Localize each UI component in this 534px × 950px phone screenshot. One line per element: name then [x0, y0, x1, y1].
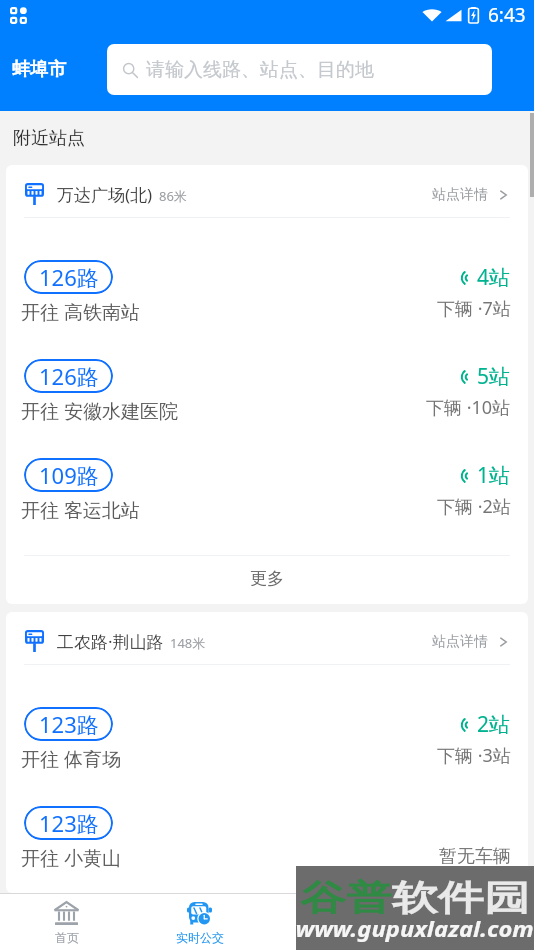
button[interactable]: 首页 — [0, 894, 133, 945]
staticText: 下辆 ·2站 — [437, 494, 511, 519]
button[interactable]: 出行 — [266, 894, 400, 945]
staticText: 123路 — [39, 709, 99, 739]
button[interactable]: 109路 — [6, 438, 528, 537]
button[interactable]: 请输入线路、站点、目的地 — [107, 44, 492, 95]
staticText: 附近站点 — [13, 127, 85, 150]
staticText: 126路 — [39, 361, 99, 391]
staticText: 首页 — [55, 930, 79, 945]
button[interactable]: 我的 — [400, 894, 534, 945]
button[interactable]: 万达广场(北) — [6, 165, 528, 217]
staticText: 软件园 — [392, 876, 530, 920]
staticText: 蚌埠市 — [12, 58, 66, 81]
staticText: 万达广场(北) — [57, 183, 153, 206]
staticText: 开往 客运北站 — [21, 497, 140, 523]
staticText: 工农路·荆山路 — [57, 630, 164, 653]
button[interactable]: 123路 — [6, 687, 528, 786]
staticText: 下辆 ·10站 — [426, 395, 511, 420]
staticText: 开往 小黄山 — [21, 845, 121, 871]
button[interactable]: 蚌埠市 — [0, 50, 107, 89]
staticText: 站点详情 — [432, 186, 488, 204]
button[interactable]: 123路 — [6, 786, 528, 885]
other: Apps — [10, 7, 27, 24]
staticText: 站点详情 — [432, 633, 488, 651]
staticText: 1站 — [477, 461, 511, 490]
button[interactable]: 126路 — [6, 339, 528, 438]
staticText: 开往 安徽水建医院 — [21, 398, 178, 424]
staticText: 下辆 ·3站 — [437, 743, 511, 768]
staticText: 4站 — [477, 263, 511, 292]
staticText: 148米 — [170, 634, 206, 652]
button[interactable]: 126路 — [6, 240, 528, 339]
staticText: 暂无车辆 — [439, 845, 511, 868]
staticText: 开往 高铁南站 — [21, 299, 140, 325]
staticText: 请输入线路、站点、目的地 — [146, 58, 374, 82]
staticText: 5站 — [477, 362, 511, 391]
staticText: 实时公交 — [176, 930, 224, 945]
staticText: 下辆 ·7站 — [437, 296, 511, 321]
staticText: 6:43 — [488, 2, 526, 28]
button[interactable]: 更多 — [6, 556, 528, 604]
staticText: 123路 — [39, 808, 99, 838]
staticText: 出行 — [321, 930, 345, 945]
button[interactable]: 工农路·荆山路 — [6, 612, 528, 664]
button[interactable]: 实时公交 — [133, 894, 266, 945]
staticText: 126路 — [39, 262, 99, 292]
staticText: 谷普 — [300, 876, 392, 920]
staticText: 86米 — [159, 187, 187, 205]
staticText: 开往 体育场 — [21, 746, 121, 772]
staticText: 更多 — [250, 568, 284, 589]
staticText: 109路 — [39, 460, 99, 490]
staticText: www.gupuxlazal.com — [295, 913, 534, 942]
staticText: 2站 — [477, 710, 511, 739]
staticText: 我的 — [455, 930, 479, 945]
